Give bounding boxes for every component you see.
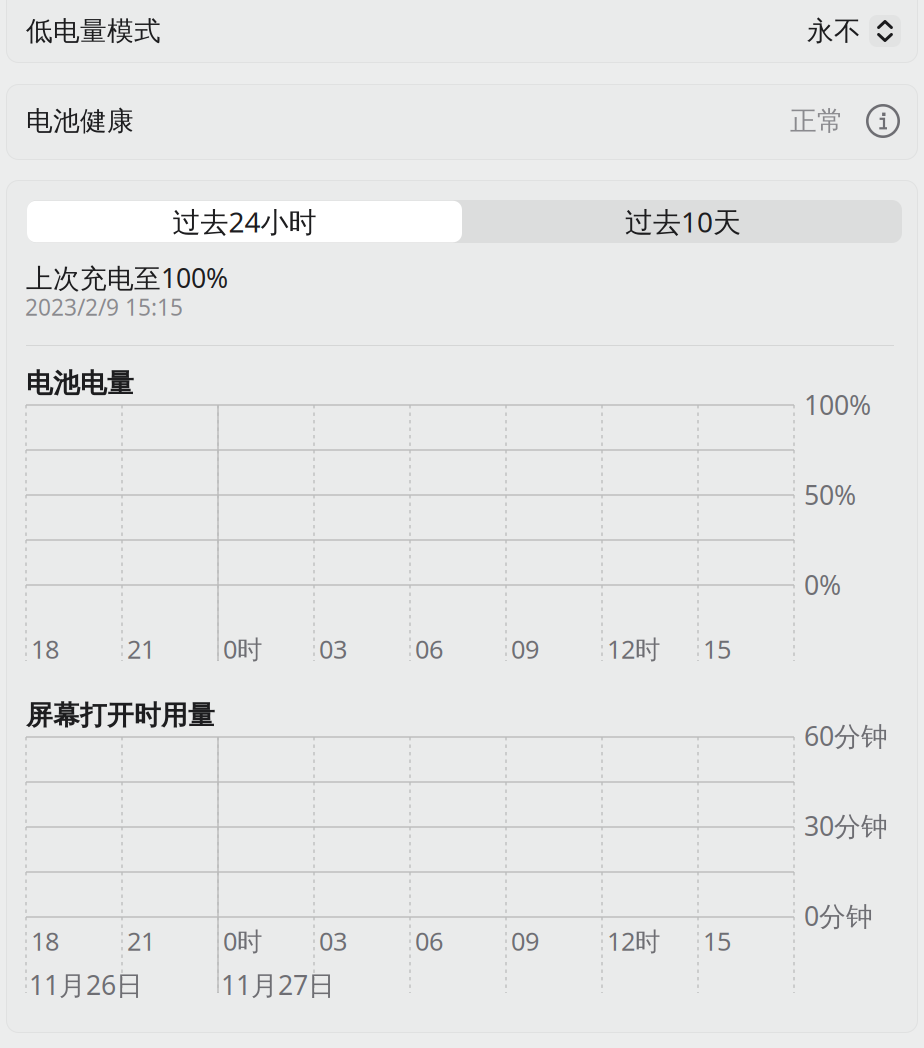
staticText: 11月27日 — [221, 967, 335, 1002]
staticText: 03 — [319, 924, 347, 958]
staticText: 60分钟 — [804, 718, 888, 753]
staticText: 过去24小时 — [172, 203, 316, 240]
staticText: 过去10天 — [625, 203, 741, 240]
staticText: 18 — [31, 632, 59, 666]
staticText: 电池电量 — [26, 367, 134, 400]
staticText: 09 — [511, 924, 539, 958]
button[interactable]: 过去24小时 — [27, 201, 462, 242]
staticText: 30分钟 — [804, 808, 888, 843]
staticText: 06 — [415, 924, 443, 958]
staticText: 2023/2/9 15:15 — [25, 292, 183, 322]
staticText: 0分钟 — [804, 898, 873, 933]
staticText: 屏幕打开时用量 — [26, 699, 215, 732]
staticText: 15 — [703, 632, 731, 666]
staticText: 0时 — [223, 924, 262, 958]
staticText: 正常 — [790, 105, 844, 137]
staticText: 09 — [511, 632, 539, 666]
staticText: 06 — [415, 632, 443, 666]
staticText: 18 — [31, 924, 59, 958]
staticText: 永不 — [807, 15, 861, 47]
staticText: 15 — [703, 924, 731, 958]
staticText: 电池健康 — [26, 105, 134, 137]
button[interactable]: 低电量模式 — [0, 0, 875, 62]
staticText: 03 — [319, 632, 347, 666]
staticText: 21 — [127, 632, 155, 666]
staticText: 12时 — [607, 924, 660, 958]
staticText: 50% — [804, 477, 856, 512]
staticText: 上次充电至100% — [26, 260, 228, 295]
staticText: 21 — [127, 924, 155, 958]
staticText: 12时 — [607, 632, 660, 666]
staticText: 100% — [804, 387, 871, 422]
staticText: 0% — [804, 567, 841, 602]
staticText: 11月26日 — [29, 967, 143, 1002]
staticText: 低电量模式 — [26, 15, 161, 47]
button[interactable]: 过去10天 — [464, 201, 902, 242]
staticText: 0时 — [223, 632, 262, 666]
button[interactable]: 电池健康 — [0, 0, 874, 74]
